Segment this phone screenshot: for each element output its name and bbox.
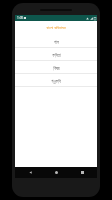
button[interactable]: গল্পকবি bbox=[15, 74, 97, 87]
button[interactable]: বিষয় bbox=[15, 61, 97, 74]
staticText: বিষয় bbox=[53, 66, 60, 70]
staticText: কবিতা bbox=[52, 53, 61, 57]
button[interactable]: Recent apps bbox=[71, 167, 93, 178]
staticText: গল্পকবি bbox=[51, 79, 61, 83]
button[interactable]: গান bbox=[15, 35, 97, 48]
staticText: বাংলা কবিতাঘর bbox=[46, 25, 66, 31]
staticText: গান bbox=[54, 40, 59, 44]
button[interactable]: কবিতা bbox=[15, 48, 97, 61]
staticText: 1:05 bbox=[17, 16, 24, 20]
button[interactable]: Back bbox=[19, 167, 41, 178]
button[interactable]: Home bbox=[45, 167, 67, 178]
